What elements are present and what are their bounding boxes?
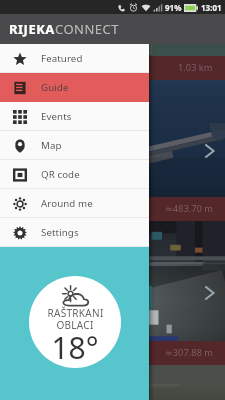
staticText: RAŠTRKANI — [47, 306, 104, 320]
button[interactable]: RAŠTRKANI — [29, 276, 121, 368]
staticText: Settings — [41, 226, 79, 239]
button[interactable]: Settings — [0, 218, 149, 247]
staticText: Around me — [41, 197, 93, 210]
staticText: Events — [41, 110, 72, 123]
button[interactable]: Map — [0, 131, 149, 160]
button[interactable]: Open item — [0, 221, 225, 365]
staticText: CONNECT — [55, 20, 120, 38]
button[interactable]: Open item — [0, 80, 225, 221]
other: Open item — [205, 144, 214, 158]
staticText: 18° — [51, 327, 99, 368]
button[interactable]: Around me — [0, 189, 149, 218]
staticText: Map — [41, 139, 62, 152]
button[interactable]: Events — [0, 102, 149, 131]
other: Open item — [205, 286, 214, 300]
staticText: ≈483.70 m — [165, 202, 213, 215]
button[interactable]: Guide — [0, 73, 149, 102]
button[interactable]: Featured — [0, 44, 149, 73]
staticText: Featured — [41, 52, 83, 65]
staticText: 1.03 km — [178, 61, 213, 74]
staticText: RIJEKA — [9, 20, 55, 38]
button[interactable]: 1.03 km — [0, 44, 225, 80]
staticText: Guide — [41, 81, 69, 94]
staticText: QR code — [41, 168, 80, 181]
staticText: OBLACI — [56, 318, 94, 332]
staticText: ≈307.88 m — [165, 346, 213, 359]
staticText: 13:01 — [201, 2, 222, 13]
staticText: 91% — [165, 2, 182, 13]
button[interactable]: QR code — [0, 160, 149, 189]
